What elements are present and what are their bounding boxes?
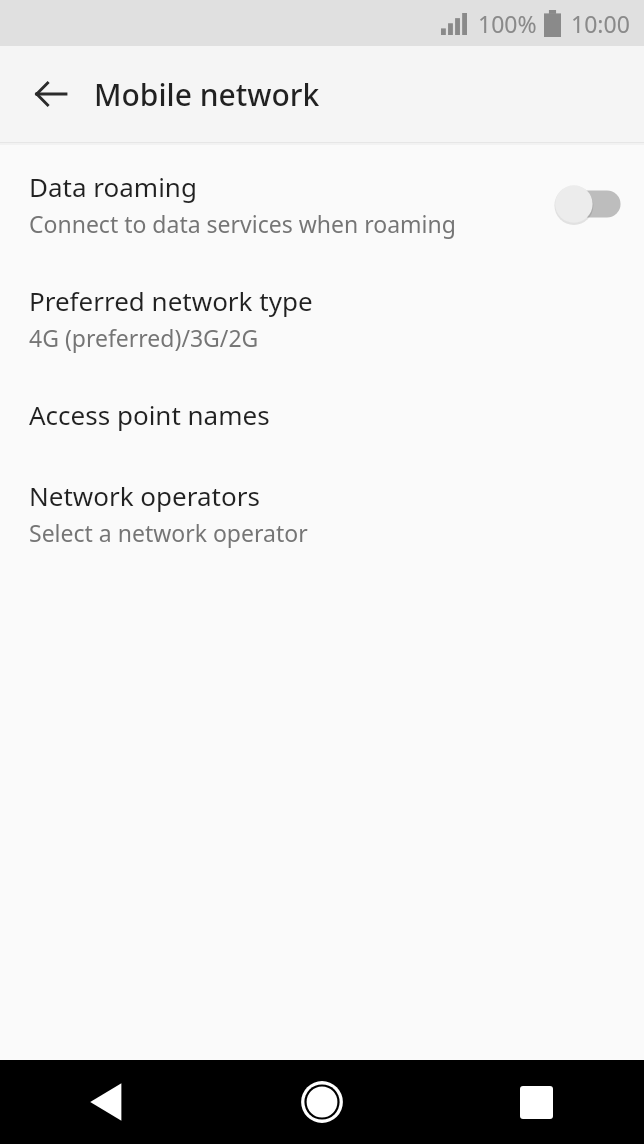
button[interactable]: Back <box>17 60 85 128</box>
staticText: Preferred network type <box>29 283 313 318</box>
staticText: Mobile network <box>94 74 320 115</box>
button[interactable]: Home <box>214 1060 429 1144</box>
button[interactable]: Data roaming <box>0 163 644 245</box>
staticText: Connect to data services when roaming <box>29 208 456 239</box>
button[interactable]: Data roaming toggle <box>548 180 626 228</box>
button[interactable]: Back <box>0 1060 214 1144</box>
staticText: Select a network operator <box>29 517 308 548</box>
staticText: 4G (preferred)/3G/2G <box>29 322 259 353</box>
staticText: 10:00 <box>571 8 630 39</box>
staticText: Network operators <box>29 478 260 513</box>
button[interactable]: Preferred network type <box>0 277 644 359</box>
staticText: 100% <box>478 8 537 39</box>
staticText: Data roaming <box>29 169 197 204</box>
button[interactable]: Recent apps <box>429 1060 644 1144</box>
button[interactable]: Access point names <box>0 391 644 438</box>
button[interactable]: Network operators <box>0 472 644 554</box>
staticText: Access point names <box>29 397 270 432</box>
